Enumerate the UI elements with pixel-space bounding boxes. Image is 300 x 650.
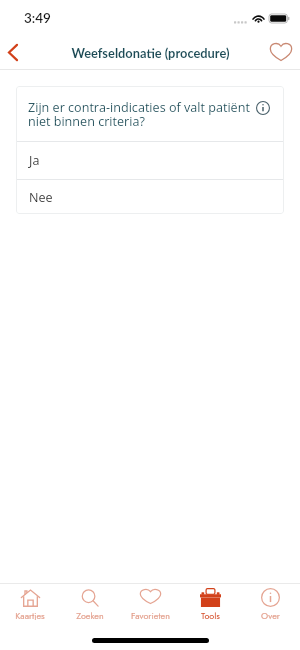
button[interactable]: Over — [240, 584, 300, 622]
button[interactable]: Ja — [16, 142, 284, 179]
button[interactable]: Back — [0, 35, 25, 69]
button[interactable]: Favorieten — [120, 584, 180, 622]
button[interactable]: Favorite — [262, 35, 300, 69]
button[interactable]: Zoeken — [60, 584, 120, 622]
staticText: 3:49 — [24, 10, 51, 26]
staticText: Weefseldonatie (procedure) — [71, 45, 230, 60]
staticText: Favorieten — [131, 609, 170, 620]
staticText: Ja — [29, 152, 40, 169]
staticText: Over — [261, 609, 280, 620]
button[interactable]: Info — [256, 101, 270, 115]
button[interactable]: Nee — [16, 180, 284, 214]
staticText: Tools — [201, 609, 220, 620]
staticText: Nee — [29, 189, 53, 206]
staticText: Kaartjes — [15, 609, 45, 620]
button[interactable]: Kaartjes — [0, 584, 60, 622]
staticText: Zijn er contra-indicaties of valt patiën… — [28, 99, 257, 130]
button[interactable]: Tools — [180, 584, 240, 622]
staticText: Zoeken — [76, 609, 104, 620]
